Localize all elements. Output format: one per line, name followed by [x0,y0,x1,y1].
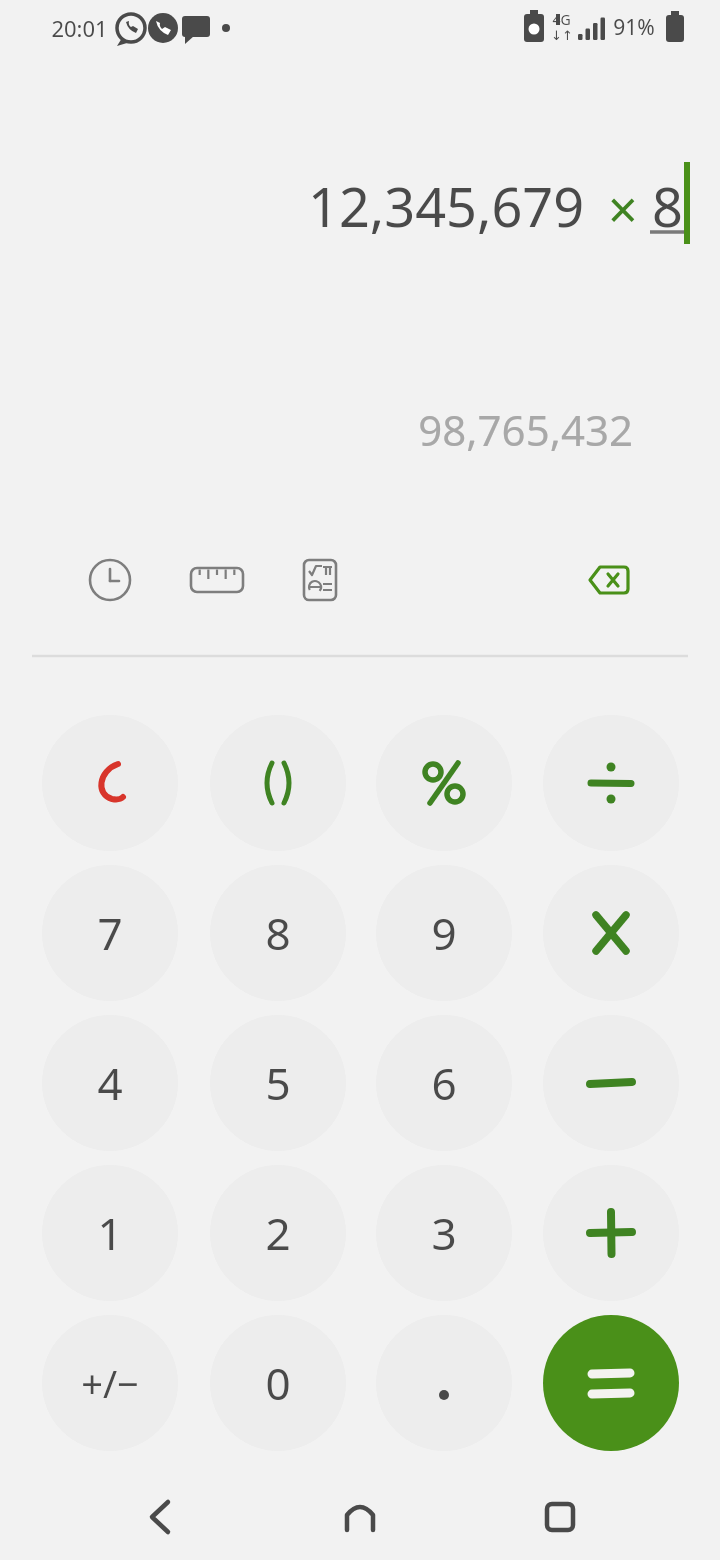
button[interactable]: Multiply [543,865,679,1001]
staticText: 9 [431,903,457,963]
staticText: ↓↑ [551,28,573,43]
staticText: 0 [265,1353,291,1413]
staticText: 6 [431,1053,457,1113]
button[interactable]: 7 [42,865,178,1001]
staticText: 7 [97,903,123,963]
staticText: 2 [265,1203,291,1263]
button[interactable]: Plus [543,1165,679,1301]
button[interactable]: Unit converter [173,536,261,624]
button[interactable]: 1 [42,1165,178,1301]
button[interactable]: 5 [210,1015,346,1151]
staticText: 8 [652,169,683,243]
staticText: 1 [97,1203,123,1263]
button[interactable]: 8 [210,865,346,1001]
button[interactable]: Divide [543,715,679,851]
button[interactable]: Recents [512,1474,608,1560]
staticText: × [608,173,638,244]
button[interactable]: 3 [376,1165,512,1301]
button[interactable]: 9 [376,865,512,1001]
staticText: 8 [265,903,291,963]
button[interactable]: Decimal point [376,1315,512,1451]
staticText: 4 [97,1053,123,1113]
button[interactable]: Percent [376,715,512,851]
button[interactable]: +/− [42,1315,178,1451]
button[interactable]: Minus [543,1015,679,1151]
button[interactable]: Formulas [276,536,364,624]
button[interactable]: Back [112,1474,208,1560]
button[interactable]: 2 [210,1165,346,1301]
staticText: +/− [81,1357,139,1409]
button[interactable]: Backspace [565,536,653,624]
staticText: 20:01 [51,13,108,43]
staticText: 12,345,679 [308,169,585,243]
button[interactable]: Clear [42,715,178,851]
staticText: 91% [613,13,655,42]
staticText: 4G [552,10,571,29]
button[interactable]: Parentheses [210,715,346,851]
staticText: 98,765,432 [418,401,633,458]
button[interactable]: History [66,536,154,624]
staticText: 3 [431,1203,457,1263]
staticText: 5 [265,1053,291,1113]
button[interactable]: Equals [543,1315,679,1451]
button[interactable]: 4 [42,1015,178,1151]
button[interactable]: 0 [210,1315,346,1451]
button[interactable]: 6 [376,1015,512,1151]
button[interactable]: Home [312,1474,408,1560]
